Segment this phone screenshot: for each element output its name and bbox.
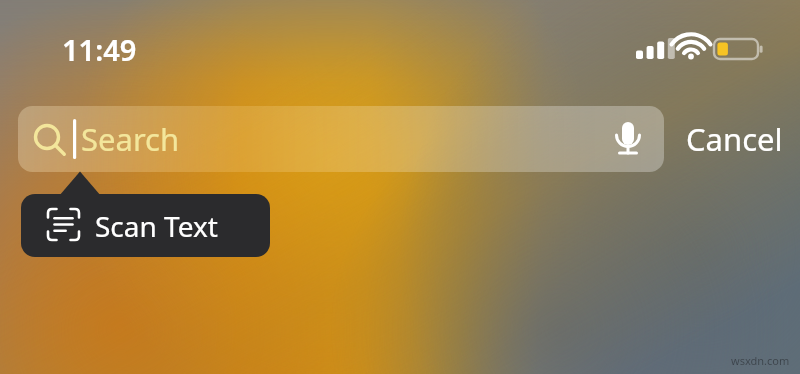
button[interactable] [18, 106, 664, 172]
button[interactable] [680, 112, 792, 166]
button[interactable]: Scan Text [21, 171, 270, 258]
